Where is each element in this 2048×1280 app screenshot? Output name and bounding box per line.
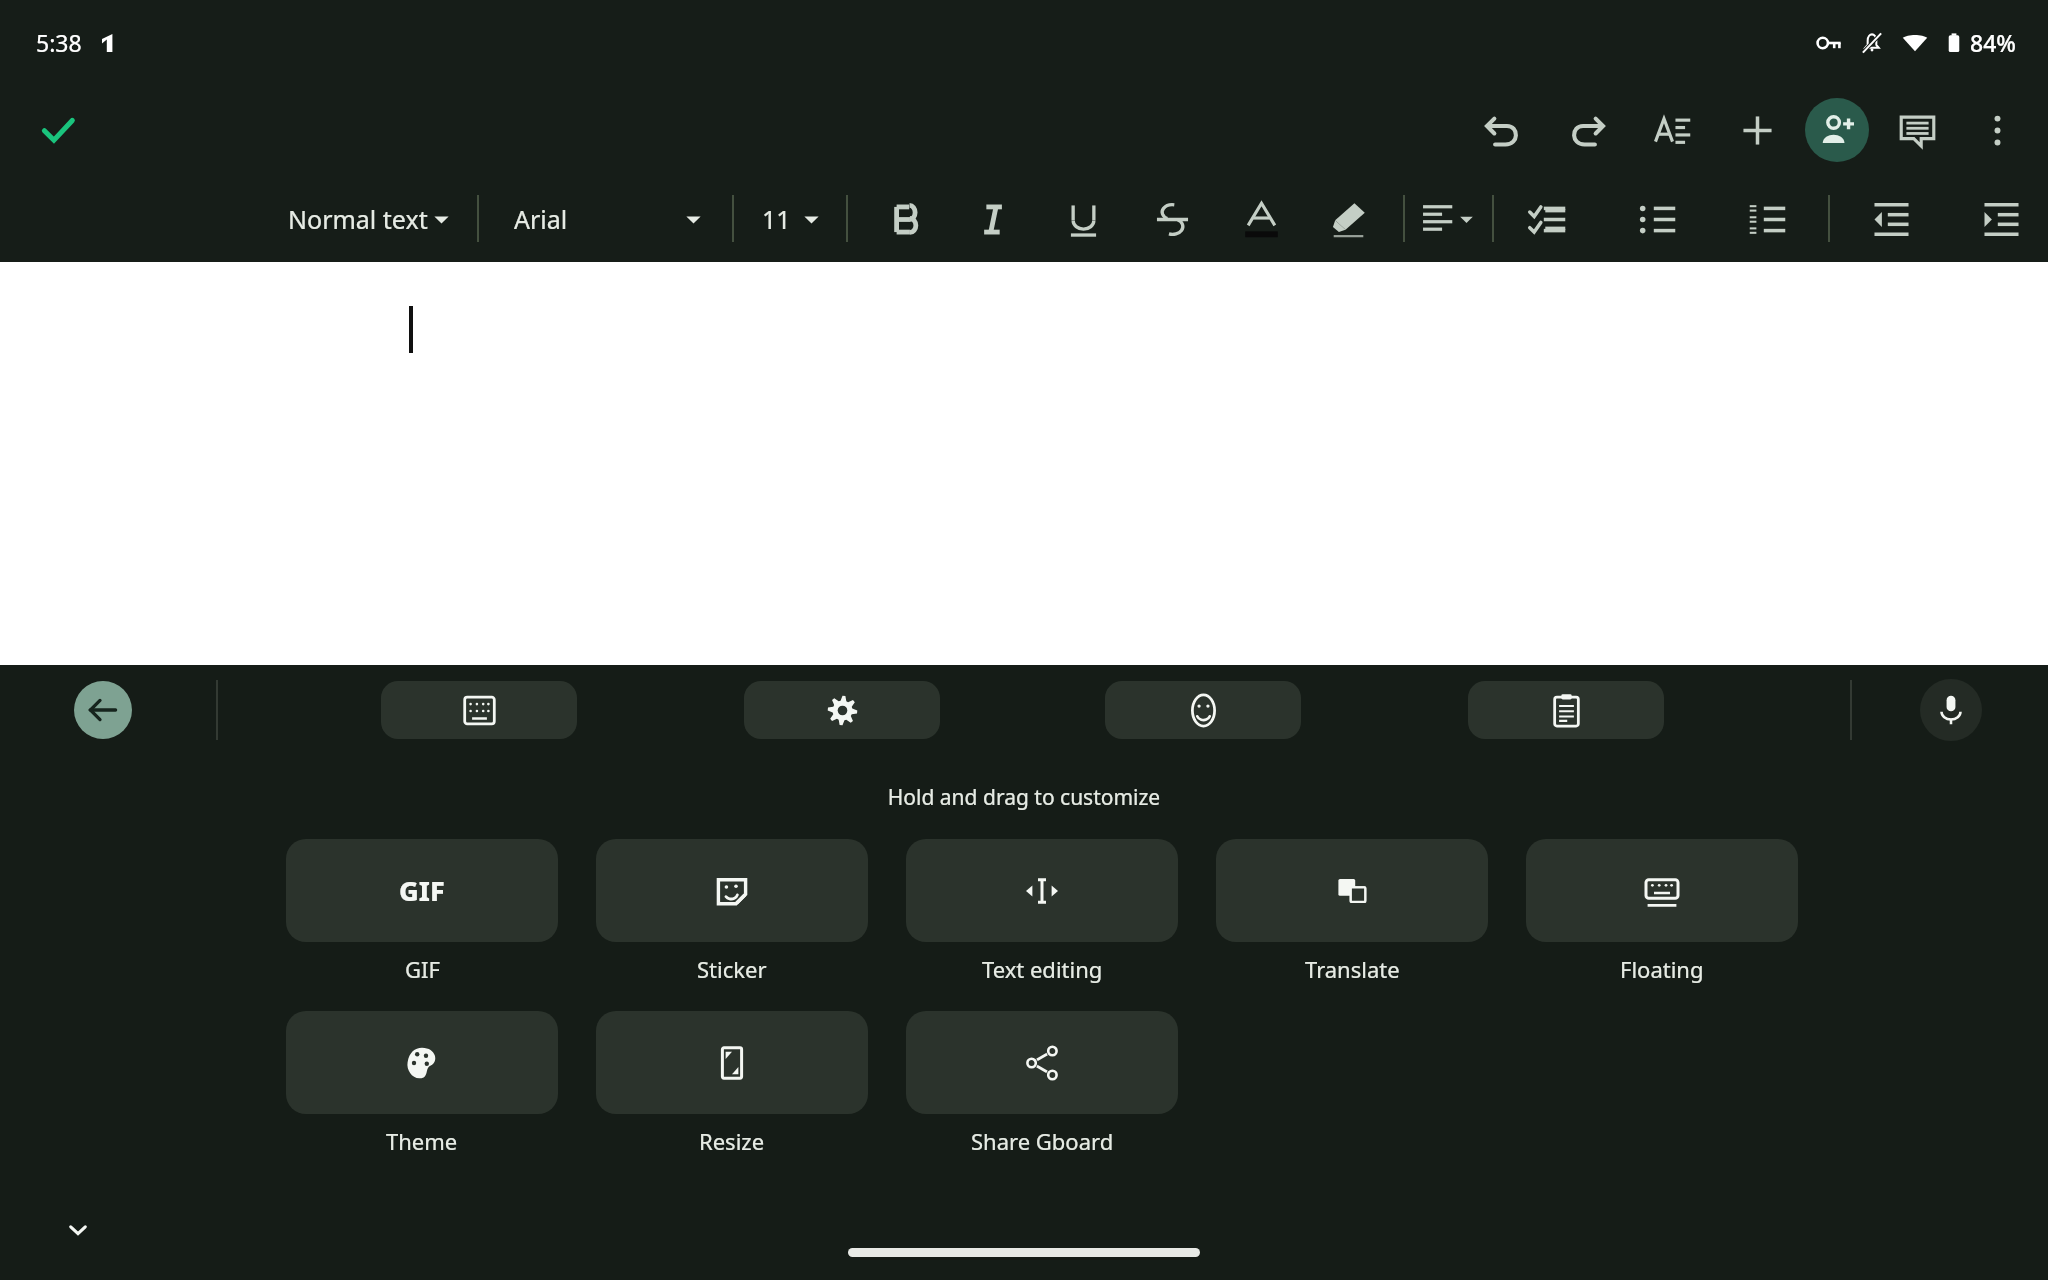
staticText: GIF [405, 954, 440, 984]
button[interactable]: Floating [1526, 839, 1798, 984]
button[interactable]: Translate [1216, 839, 1488, 984]
button[interactable]: Share [1805, 98, 1869, 162]
button[interactable]: Strikethrough [1137, 184, 1207, 254]
button[interactable]: GIF [286, 839, 558, 984]
staticText: Arial [514, 202, 568, 236]
staticText: GIF [399, 872, 445, 909]
button[interactable]: Settings [744, 681, 940, 739]
button[interactable]: Increase indent [1966, 184, 2036, 254]
button[interactable]: Decrease indent [1856, 184, 1926, 254]
button[interactable]: Format [1641, 99, 1703, 161]
button[interactable]: Emoji [1105, 681, 1301, 739]
button[interactable]: Share Gboard [906, 1011, 1178, 1156]
staticText: Floating [1620, 954, 1704, 984]
staticText: Translate [1305, 954, 1400, 984]
staticText: Theme [386, 1126, 458, 1156]
staticText: Resize [699, 1126, 765, 1156]
button[interactable]: More options [1968, 101, 2026, 159]
button[interactable]: Align [1421, 184, 1474, 254]
button[interactable]: Collapse [58, 1210, 98, 1250]
staticText: Hold and drag to customize [0, 783, 2048, 812]
button[interactable]: Keyboard [381, 681, 577, 739]
button[interactable]: Done [28, 100, 88, 160]
button[interactable]: Italic [959, 184, 1029, 254]
button[interactable]: Arial [514, 202, 702, 236]
button[interactable]: Numbered list [1732, 184, 1802, 254]
button[interactable]: Clipboard [1468, 681, 1664, 739]
button[interactable]: Bold [870, 184, 940, 254]
button[interactable]: Text color [1226, 184, 1296, 254]
button[interactable]: Bulleted list [1622, 184, 1692, 254]
staticText: Text editing [982, 954, 1103, 984]
button[interactable]: Checklist [1512, 184, 1582, 254]
staticText: 84% [1970, 27, 2016, 58]
button[interactable]: Comments [1886, 99, 1948, 161]
button[interactable]: Back [74, 681, 132, 739]
button[interactable]: Resize [596, 1011, 868, 1156]
button[interactable]: Insert [1726, 99, 1788, 161]
button[interactable]: Voice input [1920, 679, 1982, 741]
button[interactable]: 11 [762, 202, 820, 236]
button[interactable]: Sticker [596, 839, 868, 984]
staticText: Share Gboard [971, 1126, 1114, 1156]
staticText: 11 [762, 202, 791, 236]
staticText: 5:38 [36, 27, 82, 58]
staticText: Normal text [288, 202, 428, 236]
button[interactable]: Highlight [1313, 184, 1383, 254]
button[interactable]: Theme [286, 1011, 558, 1156]
button[interactable]: Underline [1048, 184, 1118, 254]
staticText: Sticker [697, 954, 767, 984]
button[interactable]: Text editing [906, 839, 1178, 984]
button[interactable]: Redo [1556, 99, 1618, 161]
button[interactable]: Normal text [288, 202, 450, 236]
button[interactable]: Undo [1471, 99, 1533, 161]
